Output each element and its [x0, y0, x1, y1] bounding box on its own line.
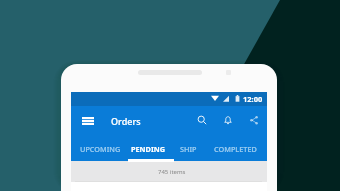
- button[interactable]: SHIP: [180, 140, 197, 157]
- button[interactable]: COMPLETED: [214, 140, 257, 157]
- button[interactable]: Open navigation menu: [78, 112, 98, 129]
- staticText: 745 items: [158, 168, 186, 176]
- button[interactable]: Search: [193, 111, 211, 129]
- button[interactable]: Notifications: [219, 111, 237, 129]
- button[interactable]: Orders: [111, 114, 141, 127]
- button[interactable]: Share: [245, 111, 263, 129]
- staticText: COMPLETED: [214, 144, 257, 154]
- staticText: SHIP: [180, 144, 197, 154]
- staticText: UPCOMING: [80, 144, 121, 154]
- staticText: Orders: [111, 115, 141, 127]
- staticText: PENDING: [131, 144, 165, 154]
- staticText: 12:00: [243, 94, 263, 103]
- button[interactable]: UPCOMING: [80, 140, 121, 157]
- button[interactable]: PENDING: [131, 140, 165, 157]
